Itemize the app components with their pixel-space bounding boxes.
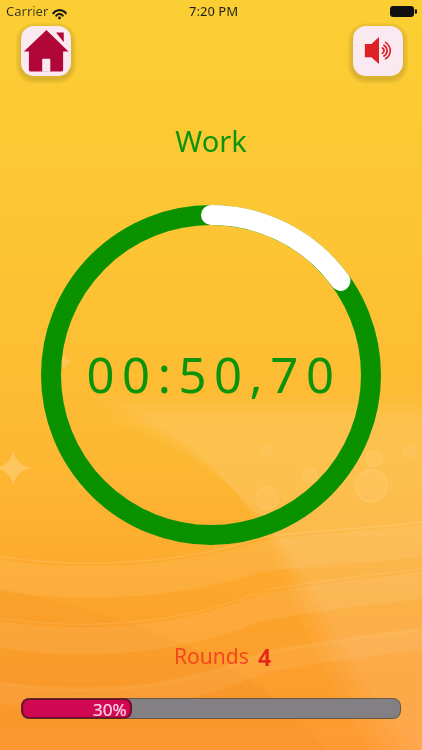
- staticText: Rounds: [174, 642, 249, 671]
- button[interactable]: Home: [21, 26, 71, 76]
- staticText: Work: [175, 121, 247, 160]
- staticText: Carrier: [6, 2, 49, 20]
- staticText: 00:50,70: [86, 341, 342, 408]
- button[interactable]: 30%: [21, 698, 401, 719]
- staticText: 30%: [93, 698, 127, 719]
- staticText: 7:20 PM: [189, 2, 239, 20]
- staticText: 4: [258, 641, 272, 672]
- button[interactable]: Sound: [353, 26, 403, 76]
